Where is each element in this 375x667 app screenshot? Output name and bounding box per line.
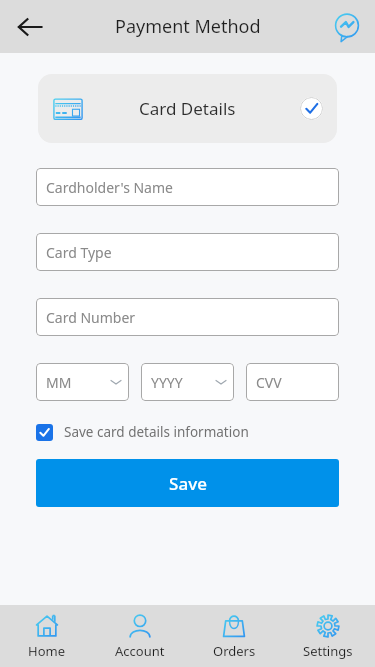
button[interactable]: Back bbox=[8, 5, 52, 49]
button[interactable]: Home bbox=[0, 605, 93, 667]
staticText: Settings bbox=[303, 642, 353, 660]
button[interactable]: Settings bbox=[281, 605, 375, 667]
button[interactable]: Chat support bbox=[328, 8, 366, 46]
staticText: Payment Method bbox=[115, 14, 261, 39]
button[interactable]: Save card details information bbox=[36, 423, 249, 441]
staticText: Orders bbox=[213, 642, 256, 660]
staticText: Card Number bbox=[46, 308, 136, 327]
staticText: Card Type bbox=[46, 243, 112, 262]
staticText: Save bbox=[169, 472, 207, 495]
staticText: CVV bbox=[256, 373, 282, 392]
button[interactable]: CVV bbox=[246, 363, 339, 401]
button[interactable]: Card Details bbox=[38, 74, 337, 143]
button[interactable]: YYYY bbox=[141, 363, 234, 401]
staticText: Home bbox=[28, 642, 65, 660]
button[interactable]: Card Type bbox=[36, 233, 339, 271]
button[interactable]: MM bbox=[36, 363, 129, 401]
button[interactable]: Save bbox=[36, 459, 339, 507]
button[interactable]: Account bbox=[93, 605, 187, 667]
staticText: Cardholder's Name bbox=[46, 178, 173, 197]
staticText: MM bbox=[46, 373, 72, 392]
button[interactable]: Card Number bbox=[36, 298, 339, 336]
staticText: Card Details bbox=[139, 97, 236, 120]
staticText: YYYY bbox=[151, 373, 183, 392]
button[interactable]: Cardholder's Name bbox=[36, 168, 339, 206]
button[interactable]: Orders bbox=[187, 605, 281, 667]
staticText: Save card details information bbox=[64, 423, 249, 441]
staticText: Account bbox=[115, 642, 165, 660]
